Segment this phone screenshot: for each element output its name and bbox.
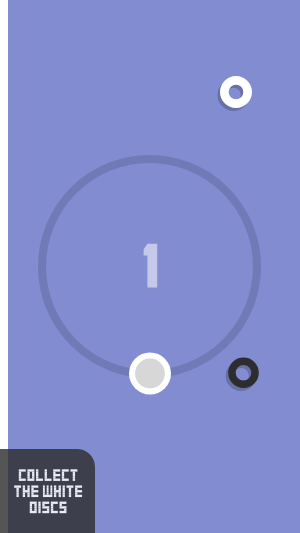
button[interactable]: Game board, tap to move the disc [0, 0, 300, 533]
other: COLLECT THE WHITE DISCS [0, 449, 95, 533]
